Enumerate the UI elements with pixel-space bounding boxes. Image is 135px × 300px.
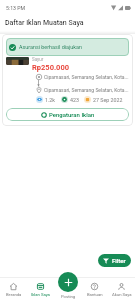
- staticText: Sayur: [32, 57, 44, 62]
- staticText: 1.2k: [45, 97, 56, 103]
- staticText: Pengaturan Iklan: [49, 111, 95, 118]
- staticText: 423: [70, 97, 79, 103]
- button[interactable]: Iklan Saya: [27, 270, 54, 300]
- button[interactable]: Pengaturan Iklan: [6, 108, 129, 121]
- button[interactable]: Bantuan: [81, 270, 108, 300]
- staticText: Filter: [112, 257, 126, 264]
- staticText: Cipamasari, Semarang Selatan, Kota...: [44, 74, 129, 80]
- staticText: Akun Saya: [112, 292, 132, 297]
- staticText: 27 Sep 2022: [93, 97, 123, 103]
- button[interactable]: Akun Saya: [108, 270, 135, 300]
- button[interactable]: Posting: [58, 272, 78, 292]
- staticText: Daftar Iklan Muatan Saya: [5, 19, 84, 27]
- staticText: Asuransi berhasil diajukan: [19, 44, 82, 50]
- staticText: Iklan Saya: [31, 292, 50, 297]
- staticText: Posting: [61, 294, 76, 299]
- button[interactable]: Asuransi berhasil diajukan: [2, 34, 133, 126]
- staticText: Rp250.000: [32, 63, 70, 72]
- staticText: Beranda: [6, 292, 22, 297]
- staticText: Bantuan: [87, 292, 103, 297]
- staticText: Cipamasari, Semarang Selatan, Kota...: [44, 87, 129, 93]
- staticText: 5:13 PM: [6, 5, 26, 11]
- button[interactable]: Beranda: [0, 270, 27, 300]
- button[interactable]: Filter: [98, 254, 131, 267]
